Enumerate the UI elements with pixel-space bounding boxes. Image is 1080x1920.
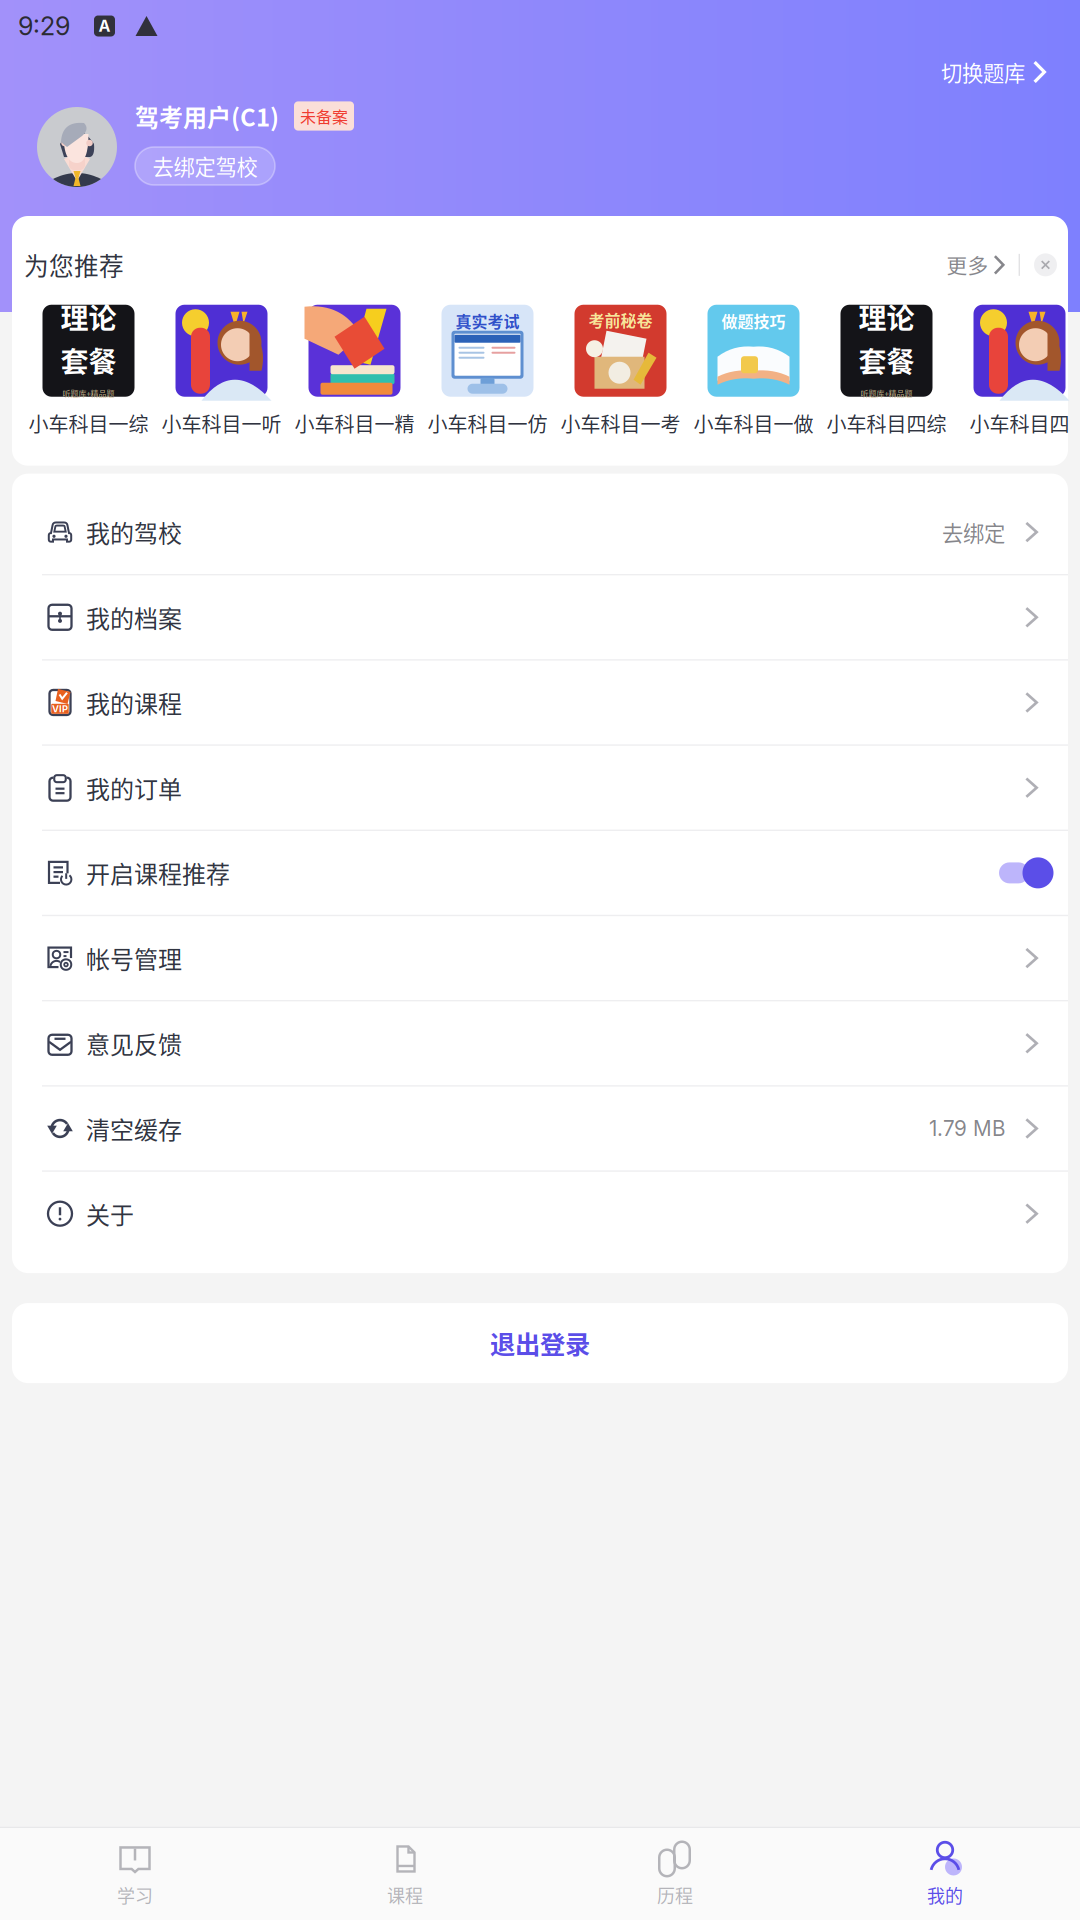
staticText: 小车科目一精 bbox=[294, 409, 414, 438]
staticText: 去绑定驾校 bbox=[152, 151, 257, 181]
button[interactable]: 理论 bbox=[820, 305, 953, 438]
button[interactable]: 历程 bbox=[540, 1824, 810, 1920]
button[interactable]: 考前秘卷 bbox=[554, 305, 687, 438]
button[interactable]: 我的 bbox=[810, 1824, 1080, 1920]
staticText: 理论 bbox=[60, 296, 116, 337]
button[interactable]: 意见反馈 bbox=[12, 1001, 1068, 1085]
staticText: 我的课程 bbox=[86, 685, 182, 720]
staticText: 听题库+精品题 bbox=[860, 387, 912, 399]
staticText: 理论 bbox=[858, 296, 914, 337]
staticText: 1.79 MB bbox=[929, 1116, 1005, 1141]
staticText: 我的驾校 bbox=[86, 515, 182, 549]
button[interactable]: VIP bbox=[12, 661, 1068, 744]
button[interactable]: 课程 bbox=[270, 1824, 540, 1920]
button[interactable]: 我的订单 bbox=[12, 746, 1068, 830]
button[interactable]: 做题技巧 bbox=[687, 305, 820, 438]
staticText: 去绑定 bbox=[942, 517, 1005, 547]
staticText: A bbox=[98, 16, 110, 36]
staticText: 关于 bbox=[86, 1196, 134, 1231]
button[interactable]: 更多 bbox=[947, 250, 1005, 280]
staticText: 小车科目一仿 bbox=[427, 409, 547, 438]
button[interactable]: 退出登录 bbox=[12, 1303, 1068, 1383]
button[interactable]: 关闭推荐 bbox=[1034, 253, 1057, 276]
staticText: 小车科目四 bbox=[969, 409, 1069, 438]
staticText: 退出登录 bbox=[490, 1325, 590, 1361]
staticText: 做题技巧 bbox=[721, 309, 785, 332]
staticText: 套餐 bbox=[60, 340, 116, 380]
button[interactable]: 去绑定驾校 bbox=[135, 147, 275, 185]
button[interactable]: 学习 bbox=[0, 1824, 270, 1920]
button[interactable]: 关于 bbox=[12, 1172, 1068, 1256]
button[interactable]: 我的档案 bbox=[12, 575, 1068, 659]
button[interactable]: 清空缓存 bbox=[12, 1087, 1068, 1170]
staticText: 考前秘卷 bbox=[588, 308, 652, 331]
staticText: 意见反馈 bbox=[86, 1026, 182, 1061]
staticText: 驾考用户(C1) bbox=[135, 99, 279, 133]
staticText: 切换题库 bbox=[941, 57, 1025, 87]
staticText: 小车科目四综 bbox=[826, 409, 946, 438]
staticText: 我的 bbox=[927, 1882, 963, 1908]
staticText: 学习 bbox=[117, 1882, 153, 1908]
button[interactable]: 小车科目四 bbox=[953, 305, 1080, 438]
button[interactable]: 理论 bbox=[22, 305, 155, 438]
staticText: 小车科目一考 bbox=[560, 409, 680, 438]
staticText: 清空缓存 bbox=[86, 1111, 182, 1146]
staticText: 历程 bbox=[657, 1882, 693, 1908]
staticText: 我的订单 bbox=[86, 770, 182, 805]
staticText: 真实考试 bbox=[455, 309, 519, 332]
staticText: 未备案 bbox=[300, 104, 348, 128]
staticText: 课程 bbox=[387, 1882, 423, 1908]
staticText: 帐号管理 bbox=[86, 941, 182, 975]
button[interactable]: 切换题库 bbox=[941, 51, 1080, 93]
staticText: 9:29 bbox=[18, 11, 70, 41]
staticText: 听题库+精品题 bbox=[62, 387, 114, 399]
staticText: 小车科目一做 bbox=[693, 409, 813, 438]
button[interactable]: 帐号管理 bbox=[12, 916, 1068, 1000]
staticText: 我的档案 bbox=[86, 600, 182, 635]
staticText: VIP bbox=[52, 703, 68, 714]
staticText: 更多 bbox=[947, 250, 989, 280]
staticText: 套餐 bbox=[858, 340, 914, 380]
staticText: 开启课程推荐 bbox=[86, 855, 230, 890]
staticText: 为您推荐 bbox=[24, 247, 124, 283]
button[interactable]: 小车科目一听 bbox=[155, 305, 288, 438]
staticText: 小车科目一综 bbox=[28, 409, 148, 438]
button[interactable]: 真实考试 bbox=[421, 305, 554, 438]
button[interactable]: 我的驾校 bbox=[12, 490, 1068, 574]
button[interactable]: 小车科目一精 bbox=[288, 305, 421, 438]
staticText: 小车科目一听 bbox=[161, 409, 281, 438]
button[interactable]: 开启课程推荐 bbox=[12, 831, 1068, 915]
